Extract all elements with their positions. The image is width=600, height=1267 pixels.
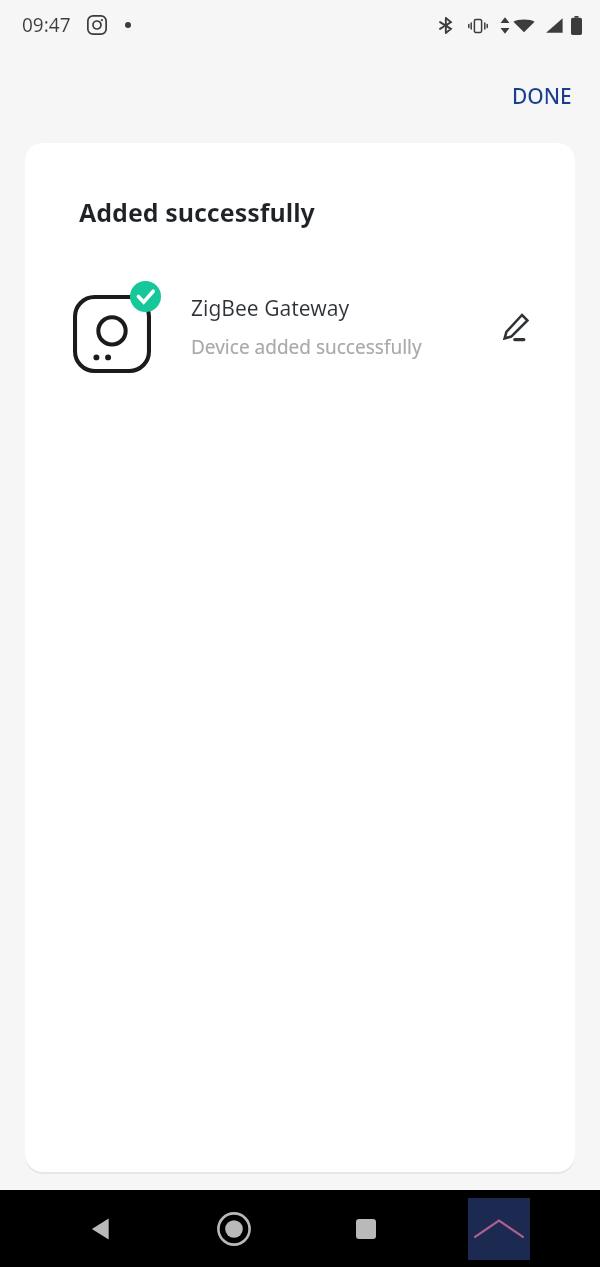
button[interactable]: ZigBee Gateway — [25, 277, 575, 377]
staticText: 09:47 — [22, 12, 71, 38]
staticText: Added successfully — [79, 195, 315, 229]
staticText: ZigBee Gateway — [191, 294, 350, 323]
button[interactable]: Recent apps — [335, 1198, 397, 1260]
button[interactable]: DONE — [494, 72, 590, 121]
staticText: DONE — [512, 82, 572, 111]
button[interactable]: Back — [70, 1198, 132, 1260]
staticText: Device added successfully — [191, 334, 422, 360]
button[interactable]: Rename device — [493, 304, 539, 350]
button[interactable]: Expand panel — [468, 1198, 530, 1260]
button[interactable]: Home — [203, 1198, 265, 1260]
